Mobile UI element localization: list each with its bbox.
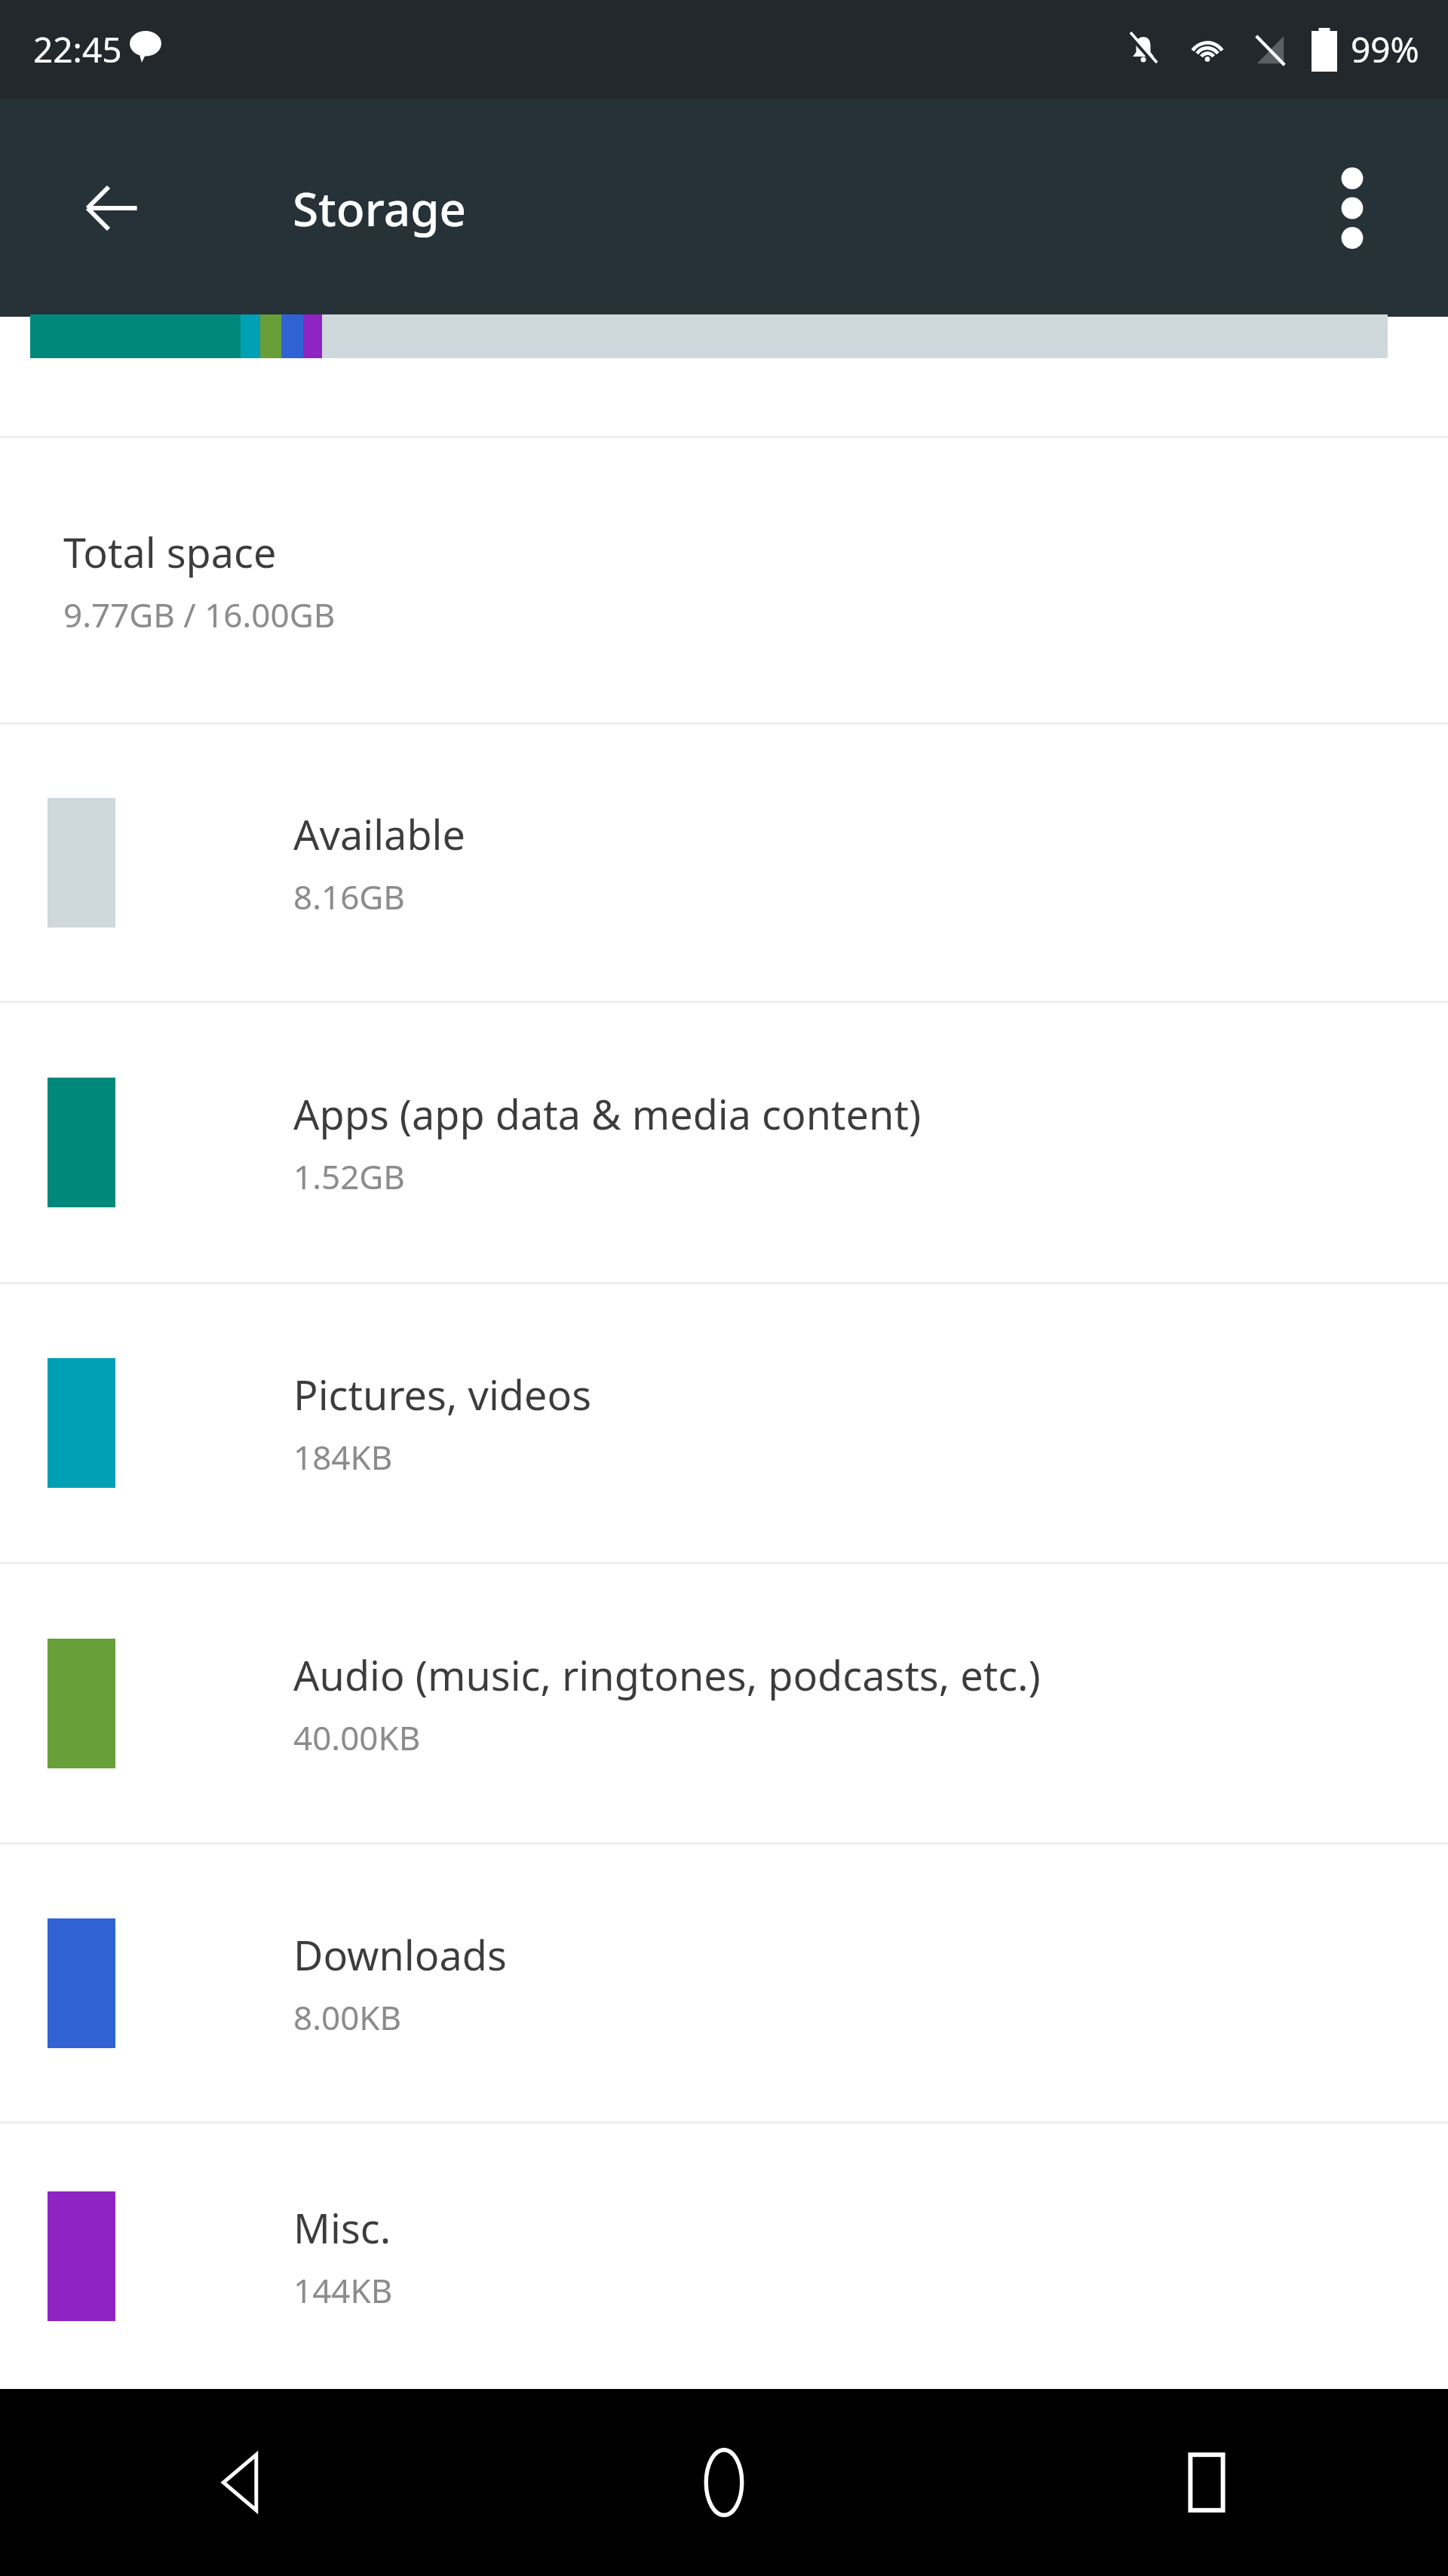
staticText: 144KB — [293, 2268, 393, 2313]
button[interactable]: More options — [1296, 152, 1409, 265]
staticText: 8.16GB — [293, 874, 405, 919]
staticText: Downloads — [293, 1927, 507, 1983]
button[interactable]: Home — [483, 2389, 965, 2576]
staticText: 99% — [1351, 26, 1419, 73]
staticText: Apps (app data & media content) — [293, 1086, 922, 1142]
button[interactable]: Downloads — [0, 1845, 1448, 2121]
staticText: 40.00KB — [293, 1715, 421, 1760]
button[interactable]: Pictures, videos — [0, 1284, 1448, 1562]
staticText: Storage — [293, 176, 467, 240]
staticText: 1.52GB — [293, 1154, 405, 1199]
button[interactable]: Apps (app data & media content) — [0, 1003, 1448, 1282]
staticText: 184KB — [293, 1434, 393, 1480]
button[interactable]: Total space — [0, 438, 1448, 722]
staticText: Total space — [63, 524, 277, 580]
button[interactable]: Back — [48, 145, 175, 271]
staticText: Audio (music, ringtones, podcasts, etc.) — [293, 1647, 1041, 1703]
staticText: 8.00KB — [293, 1995, 402, 2040]
button[interactable]: Recent apps — [965, 2389, 1448, 2576]
button[interactable]: Misc. — [0, 2124, 1448, 2389]
staticText: 22:45 — [33, 26, 122, 73]
staticText: Misc. — [293, 2200, 391, 2256]
button[interactable]: Audio (music, ringtones, podcasts, etc.) — [0, 1564, 1448, 1842]
staticText: Pictures, videos — [293, 1366, 592, 1422]
button[interactable]: Back — [0, 2389, 483, 2576]
staticText: Available — [293, 806, 465, 862]
staticText: 9.77GB / 16.00GB — [63, 592, 336, 637]
button[interactable]: Available — [0, 725, 1448, 1001]
